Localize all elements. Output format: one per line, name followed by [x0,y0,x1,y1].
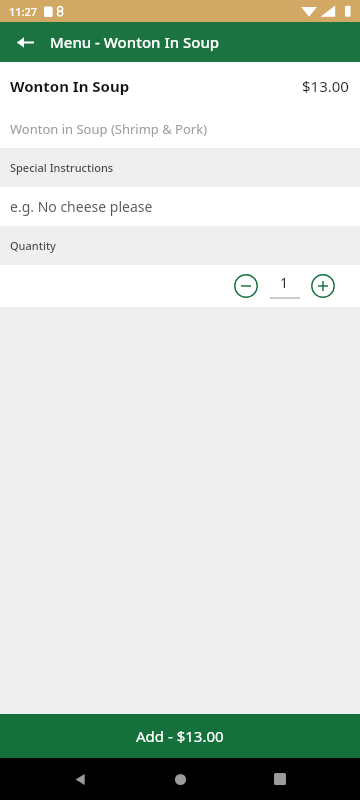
button[interactable]: e.g. No cheese please [0,187,360,226]
staticText: Quantity [10,238,56,253]
button[interactable]: Back [60,759,100,799]
button[interactable]: Add - $13.00 [0,714,360,758]
button[interactable]: Home [160,759,200,799]
button[interactable]: Recent apps [260,759,300,799]
staticText: Special Instructions [10,160,114,175]
staticText: Menu - Wonton In Soup [50,32,220,52]
staticText: Wonton In Soup [10,76,130,96]
button[interactable]: Back [9,26,41,58]
staticText: Add - $13.00 [136,726,224,746]
button[interactable]: Decrease quantity [231,271,261,301]
staticText: e.g. No cheese please [10,197,153,216]
staticText: 11:27 [9,4,38,19]
staticText: $13.00 [302,76,349,96]
button[interactable]: Wonton In Soup [0,62,360,109]
button[interactable]: Increase quantity [308,271,338,301]
staticText: Wonton in Soup (Shrimp & Pork) [10,120,208,138]
staticText: 1 [280,273,289,292]
